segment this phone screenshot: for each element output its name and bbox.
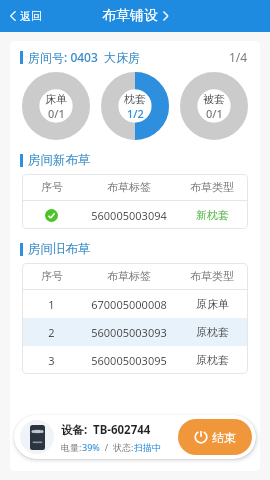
- staticText: 序号: [41, 180, 63, 194]
- staticText: 1/4: [229, 49, 248, 65]
- staticText: 560005003093: [91, 325, 167, 340]
- staticText: 房间号: 0403 大床房: [28, 49, 141, 65]
- staticText: 电量:: [61, 441, 82, 453]
- staticText: 布草铺设: [102, 7, 158, 25]
- staticText: 原床单: [196, 297, 229, 311]
- staticText: 布草类型: [190, 269, 234, 283]
- staticText: /: [100, 441, 113, 453]
- staticText: 0/1: [48, 106, 65, 121]
- staticText: 结束: [212, 430, 236, 445]
- staticText: 床单: [45, 92, 67, 106]
- button[interactable]: 被套: [180, 72, 248, 140]
- staticText: 布草标签: [107, 180, 151, 194]
- staticText: 枕套: [124, 92, 146, 106]
- staticText: 原枕套: [196, 325, 229, 339]
- staticText: 序号: [41, 269, 63, 283]
- staticText: 560005003095: [91, 353, 167, 368]
- button[interactable]: 枕套: [101, 72, 169, 140]
- staticText: 房间旧布草: [28, 241, 91, 257]
- button[interactable]: 布草铺设: [96, 4, 175, 28]
- staticText: TB-602744: [93, 422, 151, 438]
- staticText: 原枕套: [196, 353, 229, 367]
- button[interactable]: 结束: [178, 419, 252, 455]
- staticText: 1/2: [127, 106, 144, 121]
- staticText: 扫描中: [134, 442, 161, 453]
- staticText: 状态:: [113, 441, 134, 453]
- staticText: 3: [48, 353, 55, 368]
- staticText: 布草标签: [107, 269, 151, 283]
- staticText: 1: [48, 297, 55, 312]
- button[interactable]: 560005003094: [22, 201, 248, 229]
- button[interactable]: 2: [22, 318, 248, 346]
- staticText: 返回: [20, 9, 42, 23]
- button[interactable]: 1: [22, 290, 248, 318]
- staticText: 560005003094: [91, 208, 167, 223]
- staticText: 房间新布草: [28, 152, 91, 168]
- button[interactable]: 3: [22, 346, 248, 374]
- staticText: 新枕套: [196, 208, 229, 222]
- button[interactable]: 床单: [22, 72, 90, 140]
- staticText: 设备:: [61, 422, 88, 438]
- other: Device: [20, 420, 54, 454]
- staticText: 被套: [203, 92, 225, 106]
- button[interactable]: 返回: [0, 5, 52, 27]
- staticText: 0/1: [206, 106, 223, 121]
- staticText: 670005000008: [91, 297, 167, 312]
- staticText: 布草类型: [190, 180, 234, 194]
- staticText: 2: [48, 325, 55, 340]
- staticText: 39%: [82, 441, 100, 453]
